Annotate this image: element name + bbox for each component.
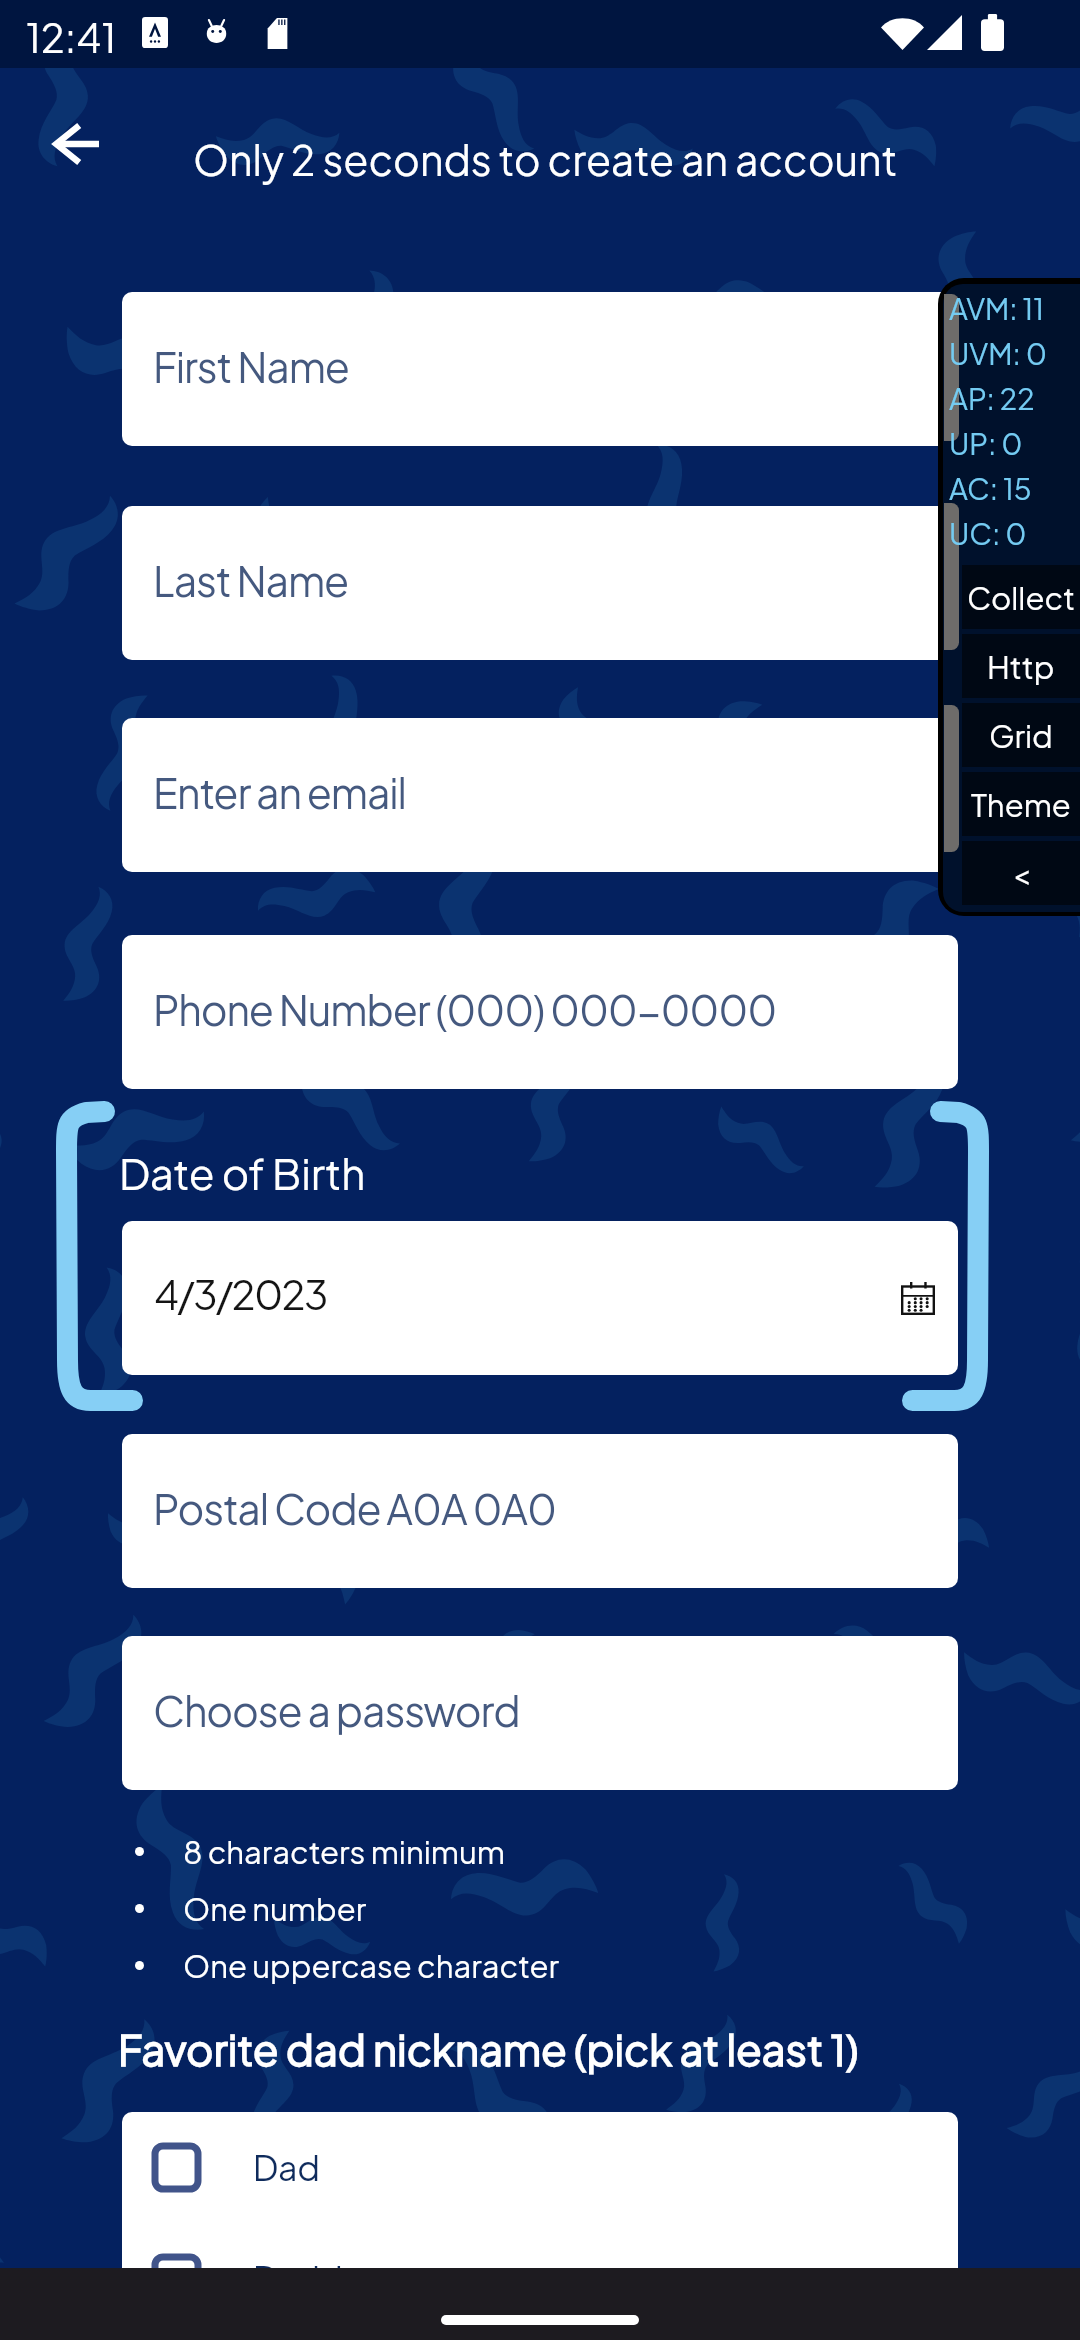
staticText: Date of Birth [119,1146,366,1199]
staticText: Last Name [153,554,349,606]
staticText: Only 2 seconds to create an account [193,133,898,185]
staticText: UVM: 0 [949,335,1047,372]
staticText: Theme [971,785,1071,824]
button[interactable]: Enter an email [122,718,958,872]
staticText: Http [987,647,1055,686]
staticText: Favorite dad nickname (pick at least 1) [118,2022,859,2075]
button[interactable]: Back [36,104,116,184]
staticText: AC: 15 [949,470,1032,507]
staticText: Postal Code A0A 0A0 [153,1482,556,1534]
button[interactable]: < [962,841,1080,905]
staticText: Grid [989,716,1053,755]
button[interactable]: Grid [962,703,1080,767]
staticText: Enter an email [153,766,406,818]
staticText: Phone Number (000) 000-0000 [153,983,777,1035]
button[interactable]: Dad [122,2112,958,2223]
button[interactable]: Phone Number (000) 000-0000 [122,935,958,1089]
button[interactable]: Collect [962,565,1080,629]
button[interactable]: Http [962,634,1080,698]
staticText: First Name [153,340,349,392]
staticText: One number [183,1889,367,1928]
button[interactable]: Choose date [890,1270,946,1326]
staticText: < [1012,854,1031,893]
staticText: AP: 22 [949,380,1035,417]
staticText: Choose a password [153,1684,520,1736]
staticText: AVM: 11 [949,290,1045,327]
staticText: 4/3/2023 [154,1268,327,1318]
staticText: 8 characters minimum [183,1832,505,1871]
button[interactable]: Daddy [122,2223,958,2334]
staticText: One uppercase character [183,1946,559,1985]
button[interactable]: Last Name [122,506,958,660]
staticText: UC: 0 [949,515,1027,552]
button[interactable]: Postal Code A0A 0A0 [122,1434,958,1588]
staticText: 12:41 [26,11,117,61]
staticText: UP: 0 [949,425,1023,462]
button[interactable]: First Name [122,292,958,446]
button[interactable]: 4/3/2023 [122,1221,958,1375]
staticText: Collect [967,578,1076,617]
button[interactable]: Choose a password [122,1636,958,1790]
staticText: Dad [253,2146,321,2189]
button[interactable]: Theme [962,772,1080,836]
staticText: Daddy [253,2257,361,2300]
